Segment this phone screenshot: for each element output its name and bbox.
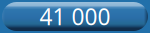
staticText: 41 000 (39, 1, 110, 31)
button[interactable]: 41 000 (2, 2, 148, 31)
